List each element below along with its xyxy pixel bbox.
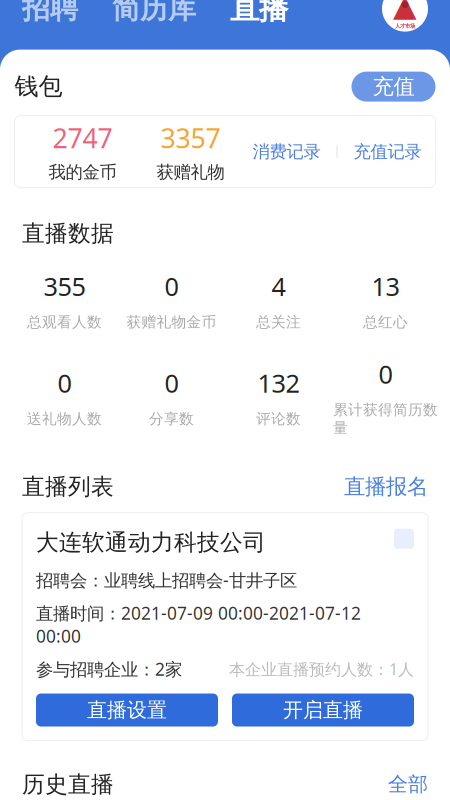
button[interactable]: 直播	[230, 0, 288, 27]
staticText: 2747	[52, 120, 112, 156]
staticText: 直播设置	[87, 698, 167, 722]
staticText: 直播报名	[344, 474, 428, 500]
staticText: 132	[257, 366, 299, 400]
staticText: 355	[43, 269, 85, 303]
staticText: 13	[371, 269, 399, 303]
staticText: 充值记录	[353, 141, 421, 162]
staticText: 大连软通动力科技公司	[36, 529, 266, 556]
staticText: 总观看人数	[27, 313, 102, 331]
staticText: 0	[378, 357, 392, 391]
staticText: 简历库	[112, 0, 196, 26]
button[interactable]: 直播设置	[36, 693, 218, 726]
staticText: 我的金币	[48, 162, 116, 183]
staticText: ▲	[393, 0, 417, 23]
staticText: 评论数	[256, 410, 301, 428]
staticText: 参与招聘企业：2家	[36, 657, 182, 680]
staticText: 人才市场	[395, 23, 415, 29]
staticText: 充值	[372, 73, 414, 100]
button[interactable]: 消费记录	[252, 141, 320, 162]
staticText: 3357	[160, 120, 220, 156]
staticText: 本企业直播预约人数：1人	[229, 658, 414, 680]
staticText: 开启直播	[283, 698, 363, 722]
button[interactable]: 充值	[351, 72, 435, 102]
staticText: 直播时间：2021-07-09 00:00-2021-07-12 00:00	[36, 601, 361, 647]
staticText: 获赠礼物	[156, 162, 224, 183]
staticText: 总关注	[256, 313, 301, 331]
staticText: 招聘会：业聘线上招聘会-甘井子区	[36, 568, 297, 591]
staticText: 直播	[230, 0, 288, 27]
staticText: 消费记录	[252, 141, 320, 162]
staticText: 0	[164, 366, 178, 400]
staticText: 招聘	[22, 0, 78, 26]
staticText: 4	[271, 269, 285, 303]
staticText: 总红心	[363, 313, 408, 331]
staticText: 送礼物人数	[27, 410, 102, 428]
staticText: 分享数	[149, 410, 194, 428]
button[interactable]: 全部	[388, 772, 428, 797]
staticText: 钱包	[14, 72, 62, 101]
staticText: 全部	[388, 772, 428, 797]
button[interactable]: 开启直播	[232, 693, 414, 726]
staticText: 累计获得简历数量	[333, 401, 438, 437]
staticText: 直播数据	[22, 220, 114, 247]
button[interactable]: 招聘	[22, 0, 78, 26]
button[interactable]: 简历库	[112, 0, 196, 26]
staticText: 直播列表	[22, 473, 114, 501]
staticText: 0	[164, 269, 178, 303]
button[interactable]: 充值记录	[353, 141, 421, 162]
staticText: 获赠礼物金币	[126, 313, 216, 331]
staticText: 历史直播	[22, 770, 114, 798]
button[interactable]: 机构标识	[382, 0, 428, 32]
button[interactable]: 直播报名	[344, 474, 428, 500]
staticText: 0	[57, 366, 71, 400]
